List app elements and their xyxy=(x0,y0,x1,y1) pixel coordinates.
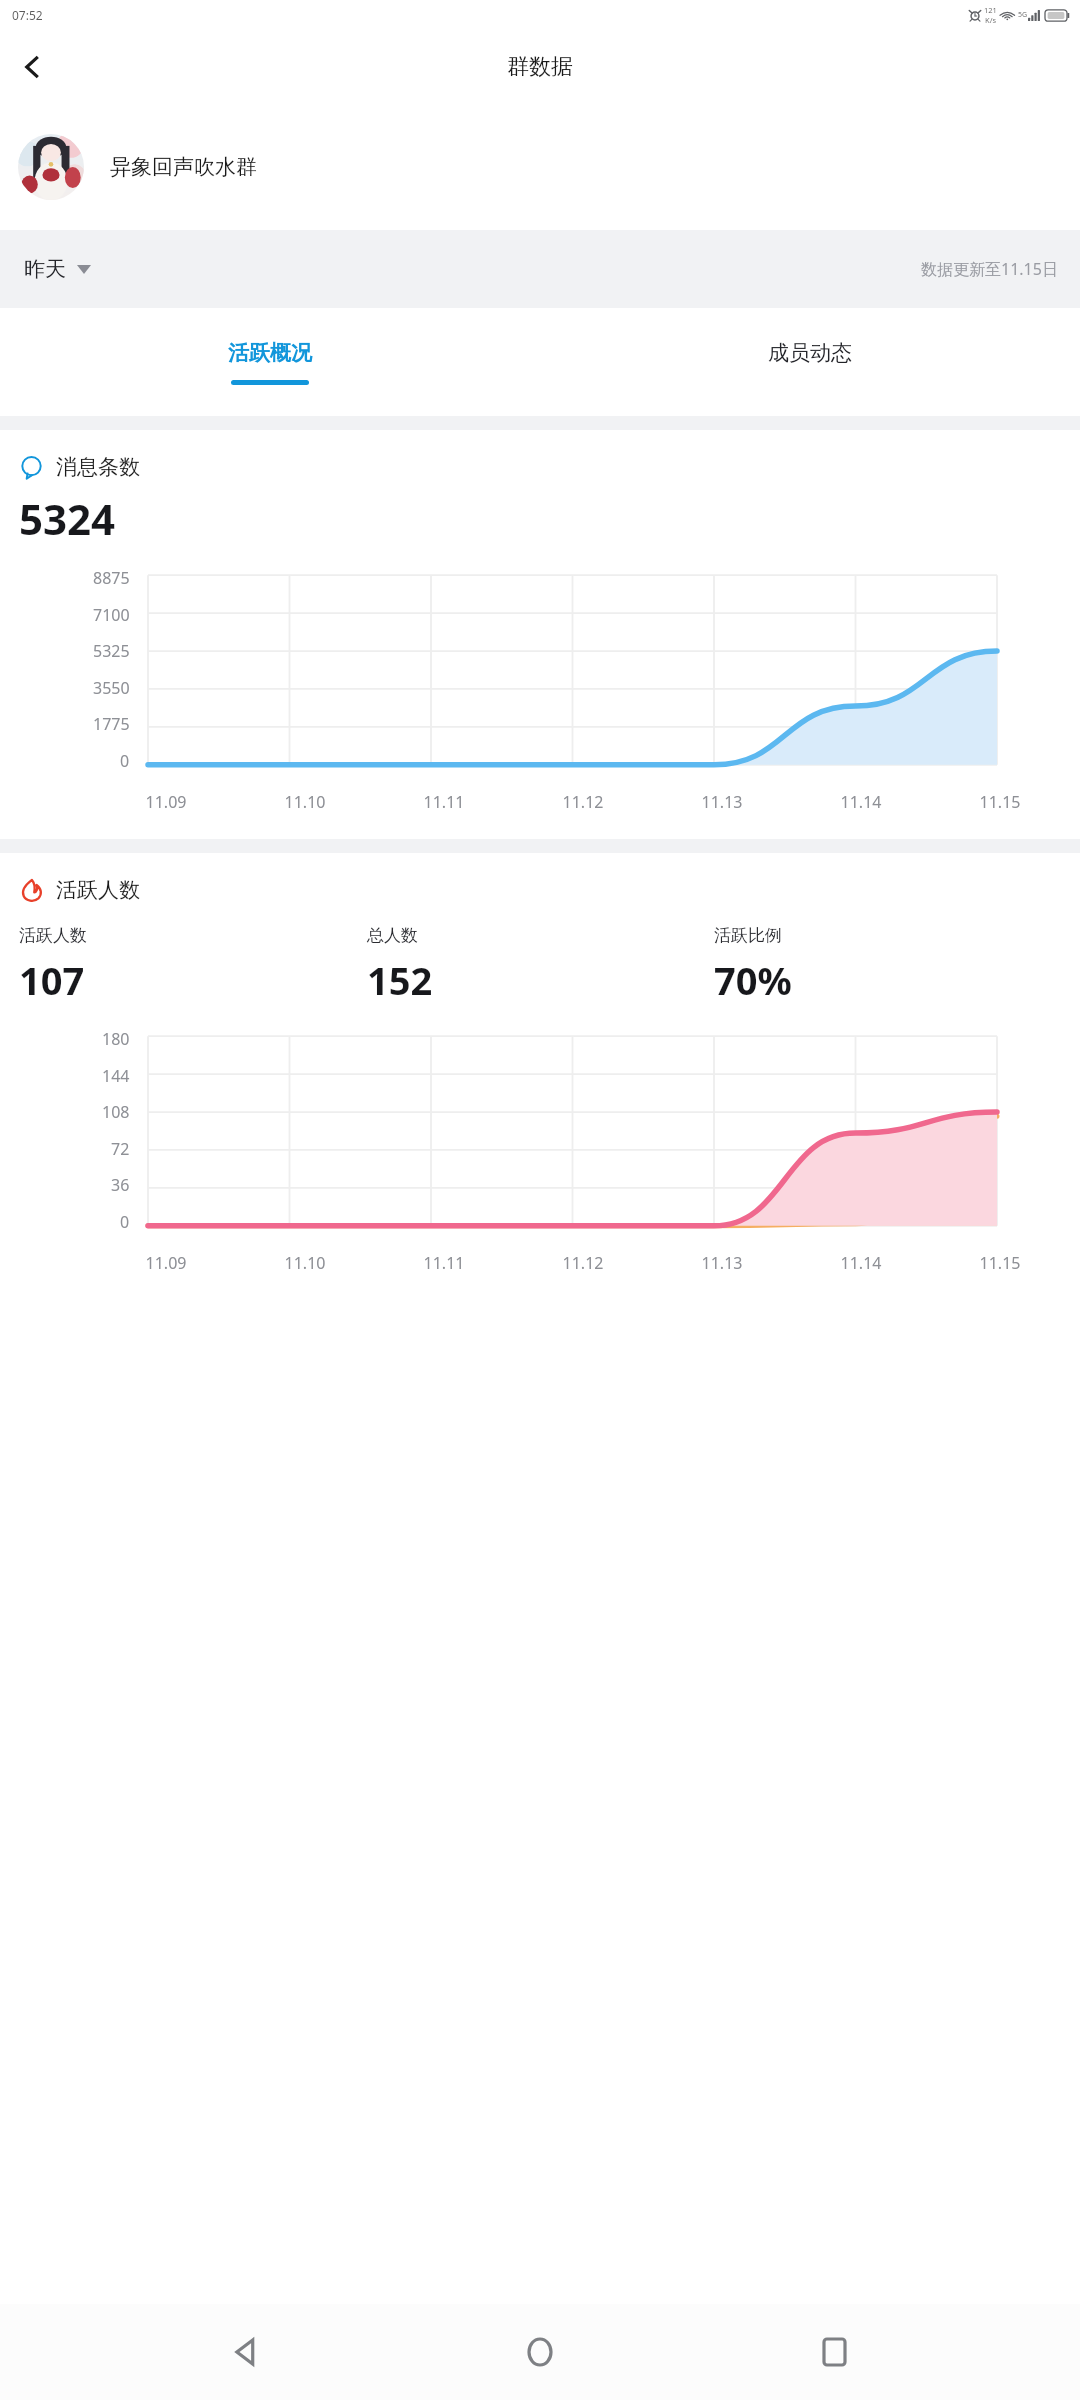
staticText: 5G xyxy=(1018,10,1028,20)
staticText: 消息条数 xyxy=(56,454,140,480)
staticText: 昨天 xyxy=(24,256,66,282)
staticText: 107 xyxy=(19,954,85,1006)
staticText: 数据更新至11.15日 xyxy=(921,258,1058,280)
staticText: 活跃人数 xyxy=(19,925,87,946)
staticText: 11.11 xyxy=(402,1252,486,1274)
staticText: 36 xyxy=(111,1174,130,1196)
staticText: 11.11 xyxy=(402,791,486,813)
staticText: 成员动态 xyxy=(768,340,852,366)
staticText: 11.13 xyxy=(680,1252,764,1274)
staticText: 7100 xyxy=(93,604,130,626)
button[interactable]: Back xyxy=(198,2304,294,2400)
button[interactable]: 异象回声吹水群 xyxy=(0,104,1080,230)
button[interactable]: 活跃概况 xyxy=(0,308,540,416)
staticText: 152 xyxy=(367,954,433,1006)
button[interactable]: Home xyxy=(492,2304,588,2400)
button[interactable]: 消息条数 xyxy=(20,454,140,480)
staticText: 活跃人数 xyxy=(56,877,140,903)
staticText: 11.13 xyxy=(680,791,764,813)
staticText: 72 xyxy=(111,1138,130,1160)
staticText: 121 xyxy=(984,5,997,15)
staticText: 活跃比例 xyxy=(714,925,782,946)
staticText: 11.15 xyxy=(958,1252,1042,1274)
staticText: 0 xyxy=(120,1211,130,1233)
staticText: 07:52 xyxy=(12,7,43,23)
button[interactable]: Back xyxy=(4,38,62,96)
staticText: 8875 xyxy=(93,567,130,589)
staticText: 5325 xyxy=(93,640,130,662)
staticText: 144 xyxy=(102,1065,130,1087)
staticText: 11.15 xyxy=(958,791,1042,813)
staticText: 11.12 xyxy=(541,1252,625,1274)
staticText: 11.09 xyxy=(124,791,208,813)
staticText: 11.14 xyxy=(819,791,903,813)
staticText: 3550 xyxy=(93,677,130,699)
staticText: 11.09 xyxy=(124,1252,208,1274)
staticText: 5324 xyxy=(19,490,116,547)
staticText: 11.14 xyxy=(819,1252,903,1274)
staticText: 总人数 xyxy=(367,925,418,946)
staticText: 70% xyxy=(714,954,792,1006)
button[interactable]: 昨天 xyxy=(20,250,95,288)
staticText: 11.12 xyxy=(541,791,625,813)
staticText: 108 xyxy=(102,1101,130,1123)
staticText: 活跃概况 xyxy=(228,340,312,366)
button[interactable]: Recents xyxy=(786,2304,882,2400)
staticText: 1775 xyxy=(93,713,130,735)
button[interactable]: 活跃人数 xyxy=(20,877,140,903)
staticText: 群数据 xyxy=(507,53,573,81)
staticText: 180 xyxy=(102,1028,130,1050)
staticText: K/s xyxy=(985,15,997,25)
button[interactable]: 成员动态 xyxy=(540,308,1080,416)
staticText: 11.10 xyxy=(263,1252,347,1274)
staticText: 0 xyxy=(120,750,130,772)
staticText: 11.10 xyxy=(263,791,347,813)
staticText: 异象回声吹水群 xyxy=(110,154,257,180)
